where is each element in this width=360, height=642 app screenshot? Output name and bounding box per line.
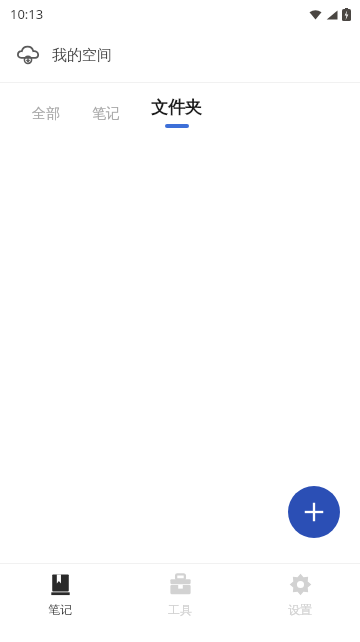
staticText: 工具 <box>168 602 192 617</box>
button[interactable]: 笔记 <box>76 105 136 135</box>
button[interactable]: 笔记 <box>0 564 120 617</box>
staticText: 笔记 <box>92 105 120 123</box>
staticText: 10:13 <box>10 5 44 23</box>
button[interactable]: 新建 <box>288 486 340 538</box>
button[interactable]: 我的空间 <box>0 28 360 82</box>
staticText: 笔记 <box>48 602 72 617</box>
staticText: 全部 <box>32 105 60 123</box>
staticText: 设置 <box>288 602 312 617</box>
button[interactable]: 设置 <box>240 564 360 617</box>
staticText: 文件夹 <box>151 97 202 118</box>
button[interactable]: 工具 <box>120 564 240 617</box>
staticText: 我的空间 <box>52 46 112 65</box>
button[interactable]: 全部 <box>16 105 76 135</box>
button[interactable]: 文件夹 <box>140 97 212 141</box>
